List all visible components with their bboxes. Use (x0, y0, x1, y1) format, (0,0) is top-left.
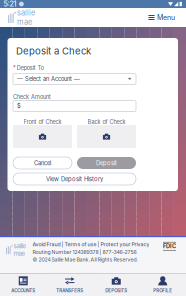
button[interactable]: View Deposit History (13, 173, 136, 185)
staticText: Deposit To (17, 65, 44, 71)
staticText: $ (17, 102, 21, 109)
staticText: FDIC (163, 243, 176, 250)
staticText: mae (13, 250, 25, 257)
button[interactable]: DEPOSITS (93, 273, 139, 296)
button[interactable]: — Select an Account — (13, 73, 136, 84)
staticText: ACCOUNTS (11, 288, 35, 293)
staticText: DEPOSITS (105, 288, 127, 293)
button[interactable]: PROFILE (139, 273, 186, 296)
button[interactable]: ACCOUNTS (0, 273, 46, 296)
staticText: Avoid Fraud | Terms of use | Protect you… (32, 241, 149, 247)
staticText: PROFILE (153, 288, 172, 293)
staticText: sallie (17, 8, 35, 17)
staticText: View Deposit History (46, 175, 103, 183)
staticText: 5:21 (3, 0, 16, 8)
staticText: * (13, 65, 16, 71)
button[interactable]: TRANSFERS (46, 273, 93, 296)
staticText: Front of Check (23, 118, 61, 125)
button[interactable]: $ (13, 100, 136, 111)
staticText: — Select an Account — (17, 75, 80, 82)
button[interactable] (77, 125, 136, 148)
staticText: Deposit a Check (16, 45, 91, 57)
button[interactable]: Menu (146, 10, 177, 25)
staticText: Back of Check (87, 118, 125, 125)
staticText: sallie (13, 242, 26, 250)
button[interactable]: Deposit (77, 157, 136, 169)
staticText: TRANSFERS (56, 288, 83, 293)
button[interactable]: Cancel (13, 157, 72, 169)
staticText: Routing Number 124389378 | 877-346-2756 (32, 249, 136, 255)
staticText: mae (17, 18, 32, 27)
staticText: Menu (157, 13, 175, 22)
staticText: Deposit (96, 159, 117, 167)
staticText: Cancel (34, 159, 51, 167)
button[interactable] (13, 125, 72, 148)
staticText: Check Amount (13, 93, 51, 100)
staticText: © 2024 Sallie Mae Bank. All Rights Reser… (32, 257, 137, 263)
